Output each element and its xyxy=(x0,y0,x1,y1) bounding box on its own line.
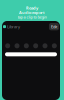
button[interactable]: Library xyxy=(3,24,20,29)
staticText: Edit xyxy=(51,24,57,29)
button[interactable]: Clip xyxy=(40,43,50,48)
button[interactable]: Edit xyxy=(49,23,59,30)
staticText: Audio export xyxy=(19,10,45,15)
button[interactable]: Clip xyxy=(22,43,31,48)
button[interactable]: Clip xyxy=(50,43,59,48)
button[interactable]: Clip xyxy=(3,43,12,48)
staticText: Ready xyxy=(26,5,38,11)
staticText: tap a clip to begin xyxy=(17,14,46,20)
staticText: Library xyxy=(7,24,20,29)
button[interactable]: Clip xyxy=(12,43,22,48)
button[interactable]: Clip xyxy=(31,43,40,48)
